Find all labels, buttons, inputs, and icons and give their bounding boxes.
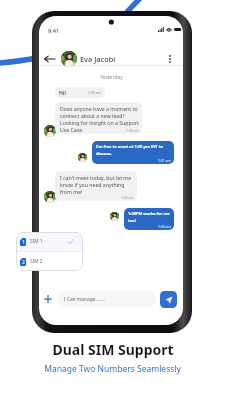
button[interactable]: Back xyxy=(39,47,183,70)
staticText: 1:30PM works for me too! xyxy=(128,211,172,223)
staticText: SIM 1 xyxy=(30,238,43,245)
staticText: I can't meet today, but let me know if y… xyxy=(60,174,134,195)
button[interactable]: Does anyone have a moment to connect abo… xyxy=(55,102,142,134)
button[interactable]: More options xyxy=(163,52,176,65)
staticText: 1:32 am xyxy=(121,195,134,200)
staticText: Eva Jacobi xyxy=(80,54,116,64)
staticText: Hi! xyxy=(59,89,66,96)
button[interactable]: Add attachment xyxy=(42,293,54,305)
button[interactable]: Back xyxy=(43,52,56,65)
button[interactable]: I can't meet today, but let me know if y… xyxy=(55,171,137,201)
staticText: 1:30 am xyxy=(126,128,139,133)
staticText: 1:30 am xyxy=(88,90,101,95)
button[interactable]: Send xyxy=(160,291,177,308)
staticText: I'm free to meet at 1:30 pm EST to discu… xyxy=(96,144,172,156)
button[interactable]: 1:30PM works for me too! xyxy=(124,208,174,230)
staticText: I Can manage........ xyxy=(64,296,106,303)
staticText: 1 xyxy=(22,239,25,246)
button[interactable]: Hi! xyxy=(55,87,105,98)
staticText: Does anyone have a moment to connect abo… xyxy=(60,105,139,133)
staticText: 1:31 am xyxy=(158,158,171,163)
button[interactable]: I'm free to meet at 1:30 pm EST to discu… xyxy=(92,141,174,164)
staticText: 2 xyxy=(22,259,25,266)
button[interactable]: I Can manage........ xyxy=(58,291,156,307)
staticText: 9:41 xyxy=(48,27,60,35)
staticText: Manage Two Numbers Seamlessly xyxy=(44,363,181,375)
button[interactable]: 2 xyxy=(16,252,83,271)
staticText: SIM 2 xyxy=(30,258,43,265)
button[interactable]: 1 xyxy=(16,232,83,251)
staticText: Yesterday xyxy=(100,74,123,81)
staticText: Dual SIM Support xyxy=(52,340,174,359)
staticText: 1:32 am xyxy=(158,224,171,229)
